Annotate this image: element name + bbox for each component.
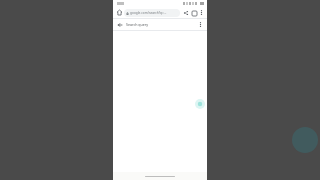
staticText: google.com/search?q=... bbox=[130, 11, 178, 15]
button[interactable]: Back bbox=[116, 21, 124, 29]
staticText: Search query bbox=[126, 22, 197, 27]
button[interactable]: google.com/search?q=... bbox=[124, 9, 180, 17]
button[interactable]: More options bbox=[198, 9, 205, 16]
button[interactable]: More options bbox=[197, 21, 204, 28]
button[interactable]: Tabs bbox=[190, 9, 198, 17]
button[interactable]: Home bbox=[115, 8, 124, 17]
button[interactable]: Share bbox=[182, 9, 190, 17]
